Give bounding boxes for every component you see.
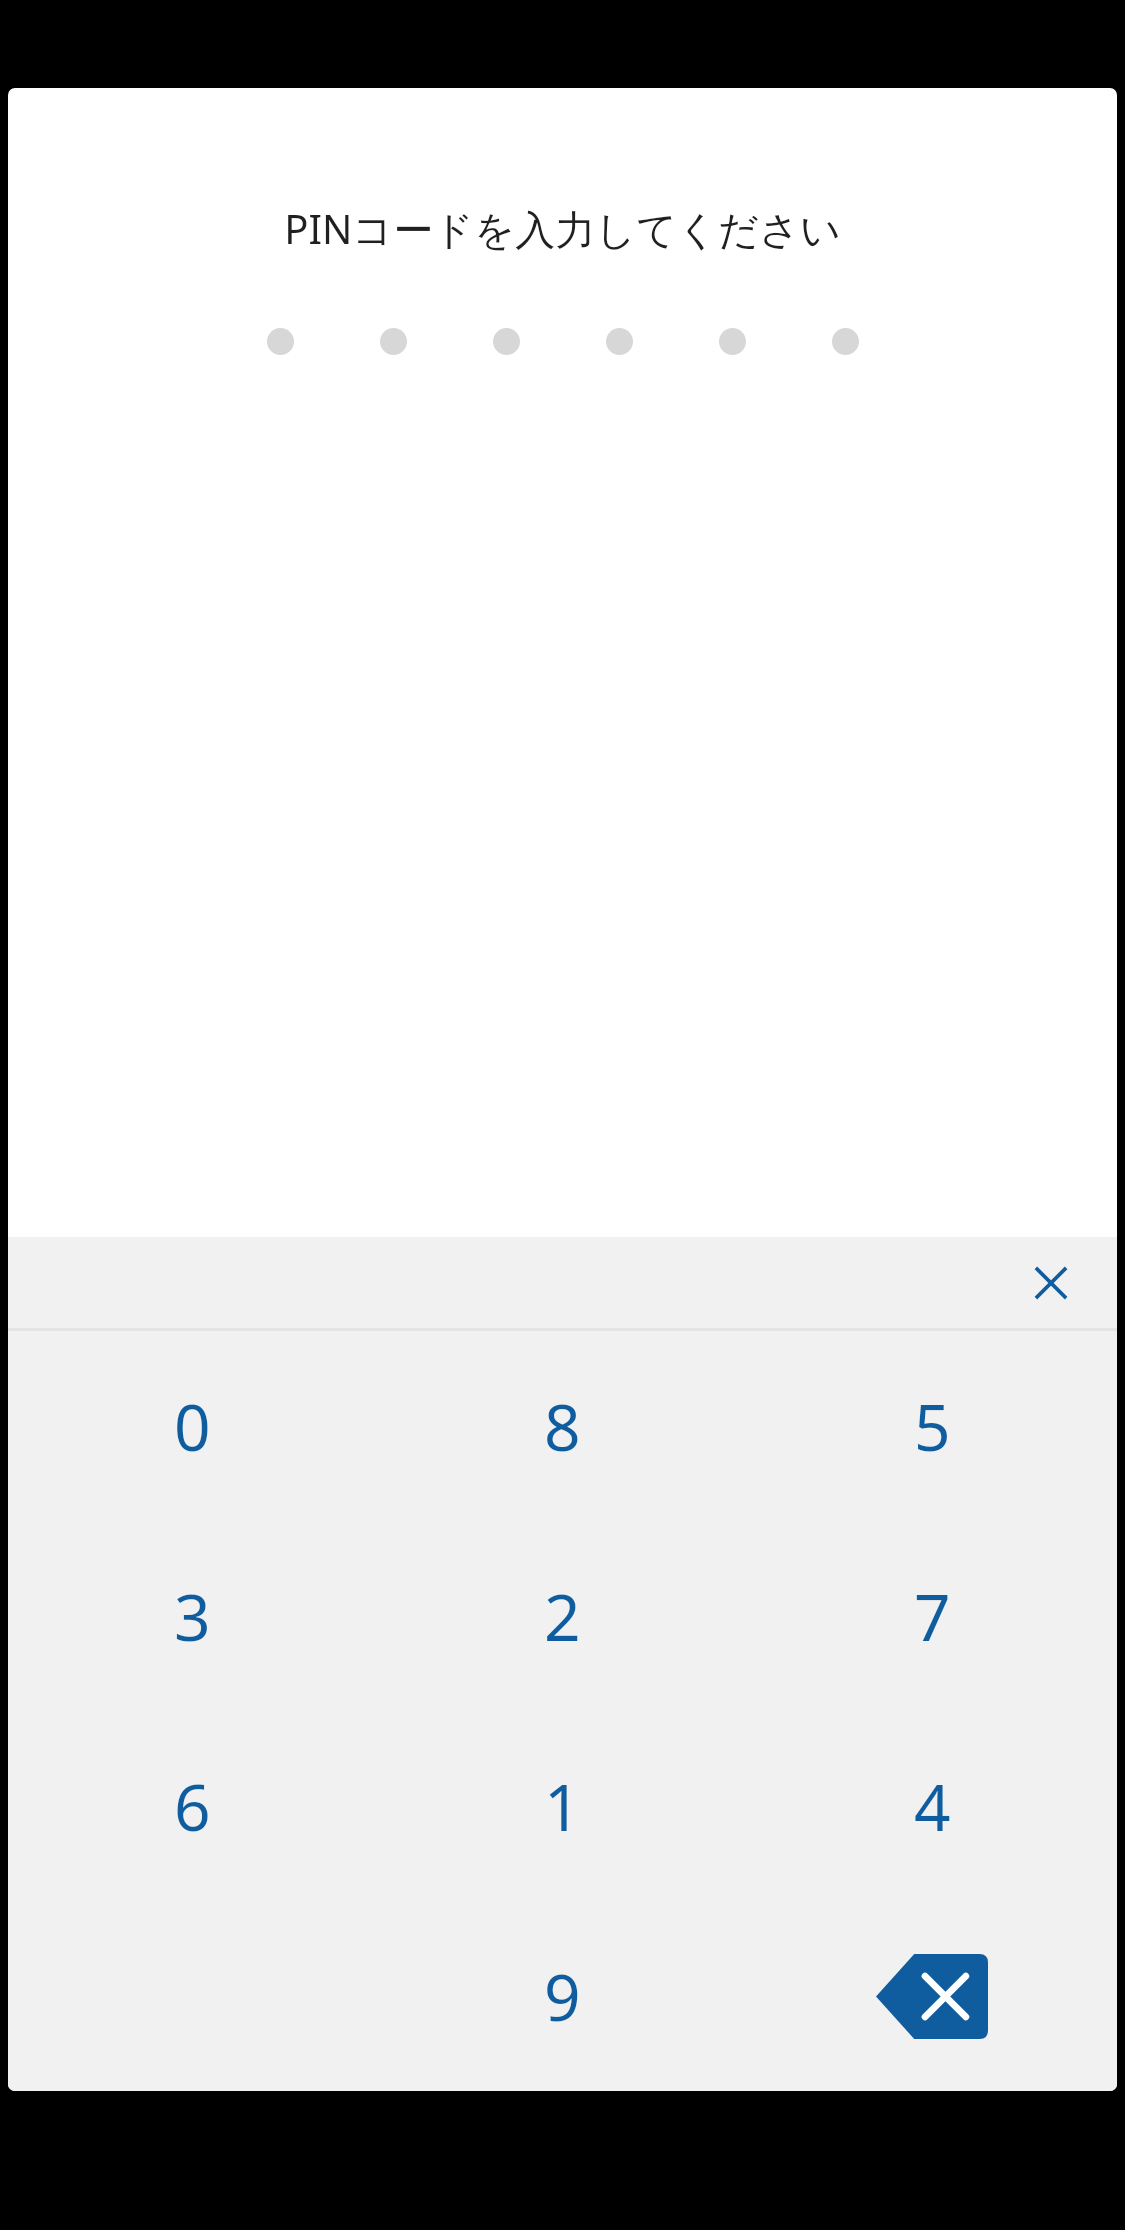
staticText: 2 <box>544 1573 581 1660</box>
staticText: 7 <box>914 1573 951 1660</box>
button[interactable]: 8 <box>377 1331 747 1521</box>
button[interactable]: 7 <box>747 1521 1117 1711</box>
staticText: 8 <box>544 1383 581 1470</box>
staticText: 9 <box>544 1953 581 2040</box>
button[interactable]: Close keypad <box>1009 1241 1093 1325</box>
button[interactable]: 5 <box>747 1331 1117 1521</box>
button[interactable]: 0 <box>8 1331 377 1521</box>
staticText: 6 <box>174 1763 211 1850</box>
button[interactable]: 1 <box>377 1711 747 1901</box>
button[interactable]: 9 <box>377 1901 747 2091</box>
staticText: 5 <box>914 1383 951 1470</box>
button[interactable]: Backspace <box>747 1901 1117 2091</box>
button[interactable]: 3 <box>8 1521 377 1711</box>
staticText: 0 <box>174 1383 211 1470</box>
staticText: 3 <box>174 1573 211 1660</box>
button[interactable]: 2 <box>377 1521 747 1711</box>
staticText: 4 <box>914 1763 951 1850</box>
button[interactable]: 6 <box>8 1711 377 1901</box>
button[interactable]: 4 <box>747 1711 1117 1901</box>
staticText: 1 <box>544 1763 581 1850</box>
staticText: PINコードを入力してください <box>284 201 841 256</box>
